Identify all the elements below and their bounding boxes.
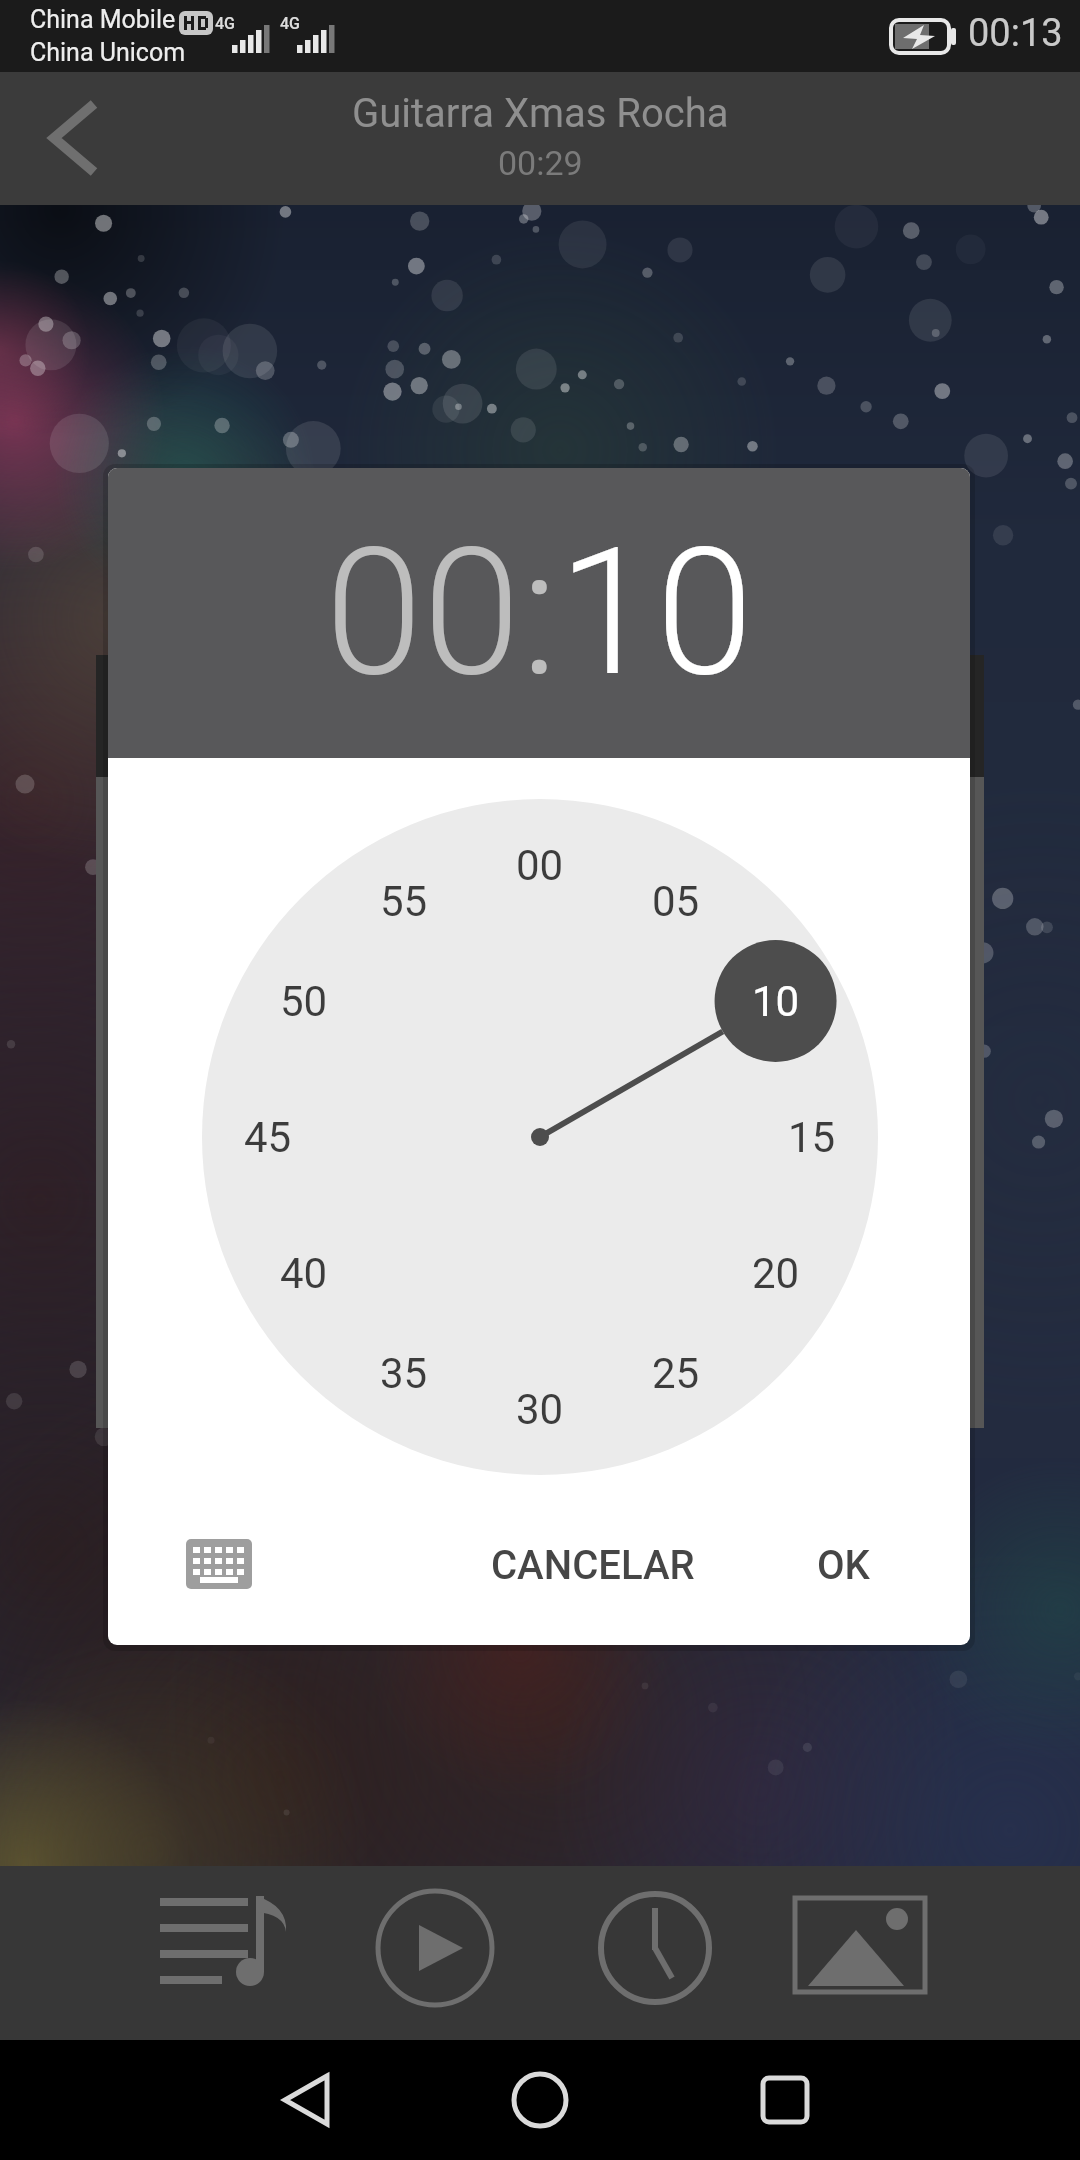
staticText: 15	[788, 1113, 836, 1162]
staticText: 05	[652, 877, 700, 926]
button[interactable]: 05	[616, 861, 736, 941]
button[interactable]	[360, 1876, 510, 2030]
button[interactable]	[460, 2040, 620, 2160]
staticText: 30	[516, 1385, 564, 1434]
button[interactable]: 35	[344, 1333, 464, 1413]
button[interactable]: CANCELAR	[463, 1515, 723, 1615]
button[interactable]	[166, 1515, 286, 1615]
staticText: 50	[280, 977, 328, 1026]
button[interactable]: 45	[208, 1097, 328, 1177]
button[interactable]: 00	[480, 825, 600, 905]
staticText: 35	[380, 1349, 428, 1398]
staticText: China Unicom	[30, 38, 186, 67]
staticText: CANCELAR	[491, 1542, 695, 1589]
button[interactable]: 20	[716, 1233, 836, 1313]
staticText: 4G	[280, 14, 300, 33]
button[interactable]: 10	[558, 510, 754, 716]
staticText: China Mobile	[30, 5, 176, 34]
button[interactable]	[245, 2040, 405, 2160]
button[interactable]: 25	[616, 1333, 736, 1413]
staticText: 00	[516, 841, 564, 890]
button[interactable]	[0, 72, 200, 205]
staticText: 45	[244, 1113, 292, 1162]
button[interactable]: 30	[480, 1369, 600, 1449]
button[interactable]: 15	[752, 1097, 872, 1177]
button[interactable]	[150, 1876, 300, 2030]
staticText: 00:13	[968, 11, 1063, 56]
staticText: 00:29	[498, 143, 583, 183]
staticText: 25	[652, 1349, 700, 1398]
button[interactable]: 55	[344, 861, 464, 941]
button[interactable]	[785, 1876, 935, 2030]
staticText: 55	[380, 877, 428, 926]
staticText: Guitarra Xmas Rocha	[352, 90, 729, 137]
staticText: :	[521, 510, 558, 716]
button[interactable]: 50	[244, 961, 364, 1041]
button[interactable]: 10	[716, 961, 836, 1041]
staticText: OK	[817, 1542, 870, 1589]
button[interactable]	[705, 2040, 865, 2160]
staticText: 20	[752, 1249, 800, 1298]
staticText: 40	[280, 1249, 328, 1298]
button[interactable]: OK	[773, 1515, 913, 1615]
button[interactable]	[580, 1876, 730, 2030]
button[interactable]: 00	[325, 510, 521, 716]
staticText: 10	[752, 977, 800, 1026]
staticText: 4G	[215, 14, 235, 33]
button[interactable]: 40	[244, 1233, 364, 1313]
